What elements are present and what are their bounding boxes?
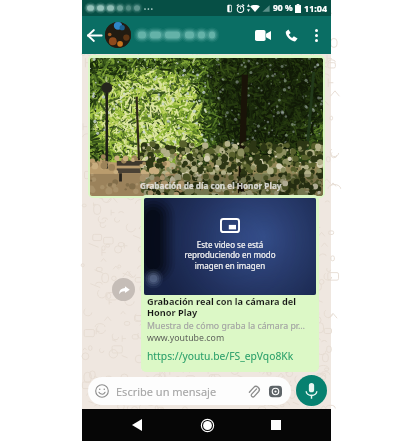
- staticText: Grabación de día con el Honor Play: [140, 180, 282, 191]
- button[interactable]: Forward: [112, 278, 135, 301]
- staticText: 90 %: [273, 2, 293, 14]
- button[interactable]: Voice call: [277, 18, 305, 52]
- staticText: Este video se está reproduciendo en modo…: [184, 239, 276, 272]
- button[interactable]: Grabación de día con el Honor Play: [88, 55, 325, 198]
- staticText: Muestra de cómo graba la cámara pr…: [147, 320, 306, 332]
- button[interactable]: Record voice message: [296, 375, 327, 406]
- button[interactable]: More options: [305, 18, 327, 52]
- staticText: 11:04: [304, 2, 328, 14]
- staticText: https://youtu.be/FS_epVqo8Kk: [147, 349, 294, 363]
- button[interactable]: Back: [123, 411, 151, 439]
- button[interactable]: Profile photo: [105, 22, 131, 48]
- staticText: Grabación real con la cámara del Honor P…: [147, 295, 297, 319]
- staticText: Escribe un mensaje: [116, 384, 217, 399]
- button[interactable]: Back: [83, 18, 105, 52]
- staticText: www.youtube.com: [147, 332, 225, 344]
- button[interactable]: Este video se está reproduciendo en modo…: [141, 195, 319, 372]
- button[interactable]: Home: [193, 411, 221, 439]
- button[interactable]: Recents: [262, 411, 290, 439]
- button[interactable]: Escribe un mensaje: [88, 377, 291, 405]
- button[interactable]: Video call: [249, 18, 277, 52]
- button[interactable]: [138, 18, 249, 52]
